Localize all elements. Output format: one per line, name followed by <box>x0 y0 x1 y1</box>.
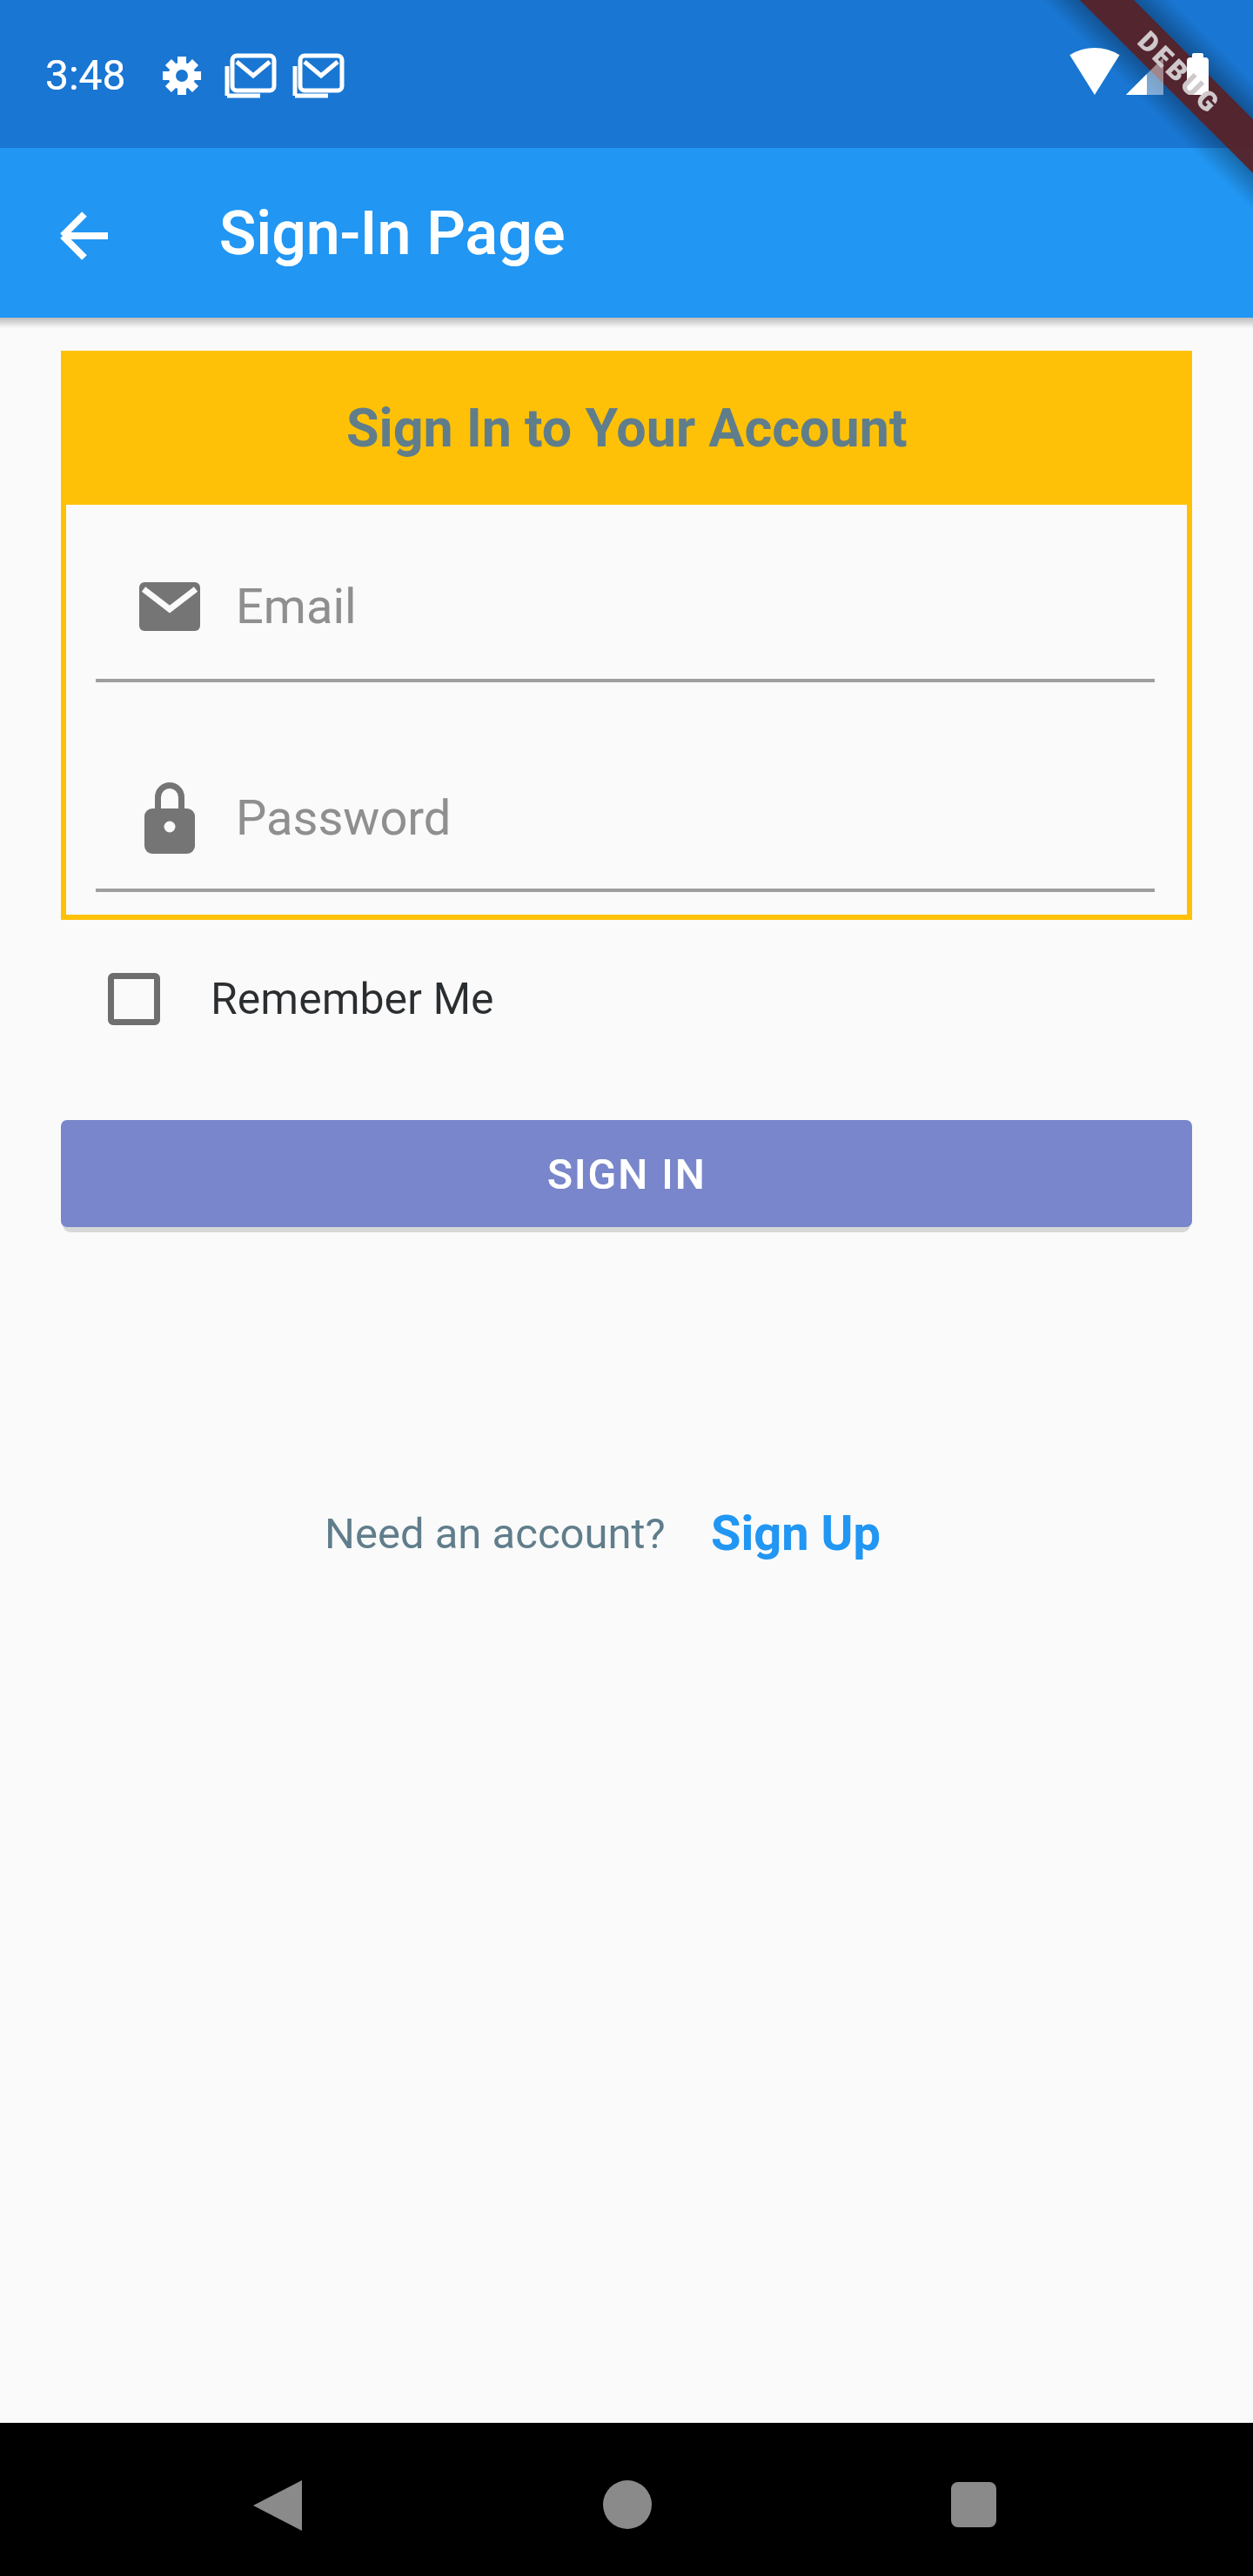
staticText: Need an account? <box>325 1509 666 1559</box>
staticText: Email <box>236 578 357 635</box>
staticText: 3:48 <box>45 50 126 97</box>
staticText: Sign Up <box>711 1505 881 1562</box>
staticText: DEBUG <box>1132 25 1228 121</box>
button[interactable] <box>24 175 146 297</box>
button[interactable]: Sign Up <box>711 1505 881 1562</box>
button[interactable] <box>603 2480 652 2529</box>
button[interactable] <box>229 2480 326 2529</box>
button[interactable] <box>78 766 1175 892</box>
button[interactable] <box>951 2482 996 2527</box>
staticText: Password <box>236 789 452 847</box>
button[interactable]: Remember Me <box>108 964 494 1034</box>
button[interactable]: SIGN IN <box>61 1120 1192 1227</box>
staticText: Remember Me <box>211 974 494 1025</box>
staticText: SIGN IN <box>547 1150 707 1198</box>
button[interactable] <box>78 557 1175 683</box>
staticText: Sign In to Your Account <box>346 397 908 459</box>
staticText: Sign-In Page <box>219 198 566 269</box>
